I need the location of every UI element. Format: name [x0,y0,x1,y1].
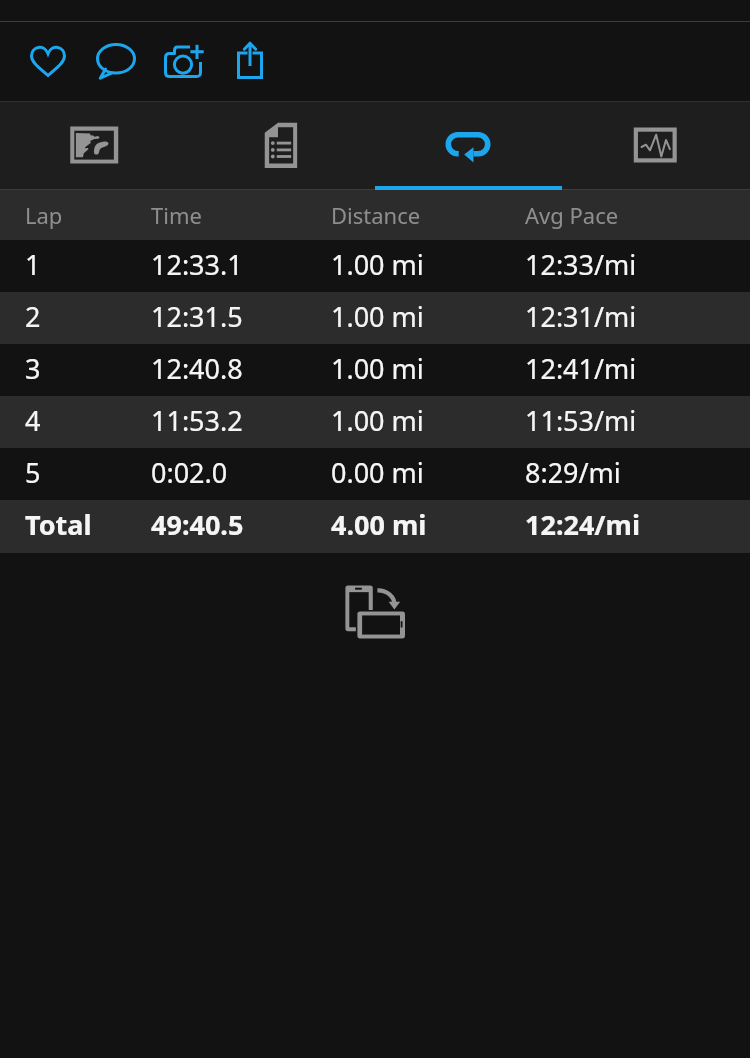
button[interactable]: Laps [374,102,562,189]
button[interactable]: Like [14,22,82,101]
staticText: 4.00 mi [331,506,427,543]
staticText: 8:29/mi [525,454,621,491]
button[interactable]: Share [216,22,284,101]
staticText: Avg Pace [525,200,619,230]
staticText: Time [151,200,202,230]
button[interactable]: Comment [82,22,150,101]
staticText: Distance [331,200,421,230]
staticText: 1.00 mi [331,350,424,387]
staticText: 12:33.1 [151,246,243,283]
button[interactable]: Add photo [150,22,218,101]
staticText: 49:40.5 [151,506,244,543]
staticText: 1.00 mi [331,246,424,283]
staticText: 3 [25,350,41,387]
button[interactable]: Rotate screen [339,579,411,645]
staticText: 1.00 mi [331,298,424,335]
staticText: 11:53/mi [525,402,637,439]
staticText: 12:24/mi [525,506,640,543]
staticText: 5 [25,454,41,491]
staticText: Lap [25,200,63,230]
staticText: Total [25,506,92,543]
staticText: 12:41/mi [525,350,637,387]
staticText: 12:31.5 [151,298,243,335]
staticText: 12:33/mi [525,246,637,283]
staticText: 4 [25,402,41,439]
staticText: 0.00 mi [331,454,424,491]
button[interactable]: Summary [187,102,374,189]
staticText: 1 [25,246,41,283]
staticText: 12:31/mi [525,298,637,335]
button[interactable]: Graph [562,102,750,189]
button[interactable]: Map [0,102,187,189]
staticText: 12:40.8 [151,350,243,387]
staticText: 1.00 mi [331,402,424,439]
staticText: 11:53.2 [151,402,243,439]
staticText: 0:02.0 [151,454,228,491]
staticText: 2 [25,298,41,335]
